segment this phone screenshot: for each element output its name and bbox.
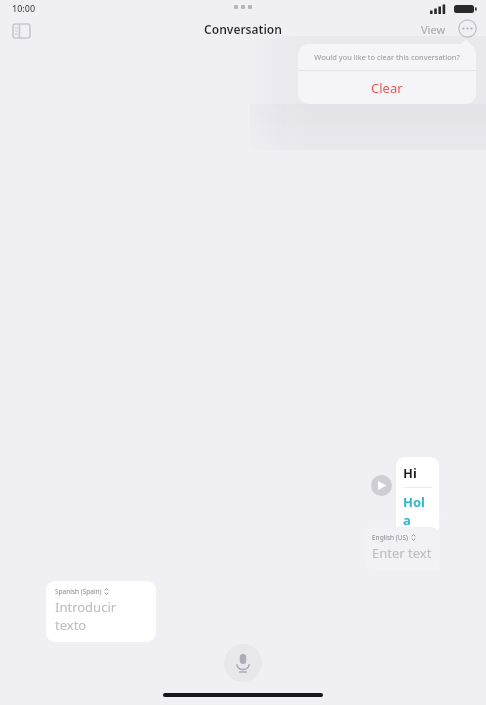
staticText: Spanish (Spain) (55, 587, 102, 596)
button[interactable]: Record voice (224, 644, 262, 682)
staticText: Conversation (204, 21, 282, 37)
button[interactable]: View (418, 19, 449, 40)
button[interactable]: English (US) (364, 527, 440, 570)
staticText: Clear (371, 79, 403, 97)
button[interactable]: Hi (396, 457, 439, 536)
button[interactable]: Toggle sidebar (8, 18, 34, 44)
button[interactable]: Clear (298, 71, 476, 104)
staticText: Enter text (372, 544, 432, 562)
staticText: 10:00 (12, 2, 36, 14)
staticText: Would you like to clear this conversatio… (314, 52, 460, 62)
button[interactable]: Spanish (Spain) (46, 581, 156, 642)
staticText: View (421, 22, 446, 37)
button[interactable]: Play translation (370, 474, 392, 496)
staticText: Hi (403, 464, 417, 482)
button[interactable]: More options (456, 17, 478, 39)
staticText: Hola (403, 493, 432, 529)
staticText: English (US) (372, 533, 409, 542)
staticText: Introducir texto (55, 598, 148, 634)
